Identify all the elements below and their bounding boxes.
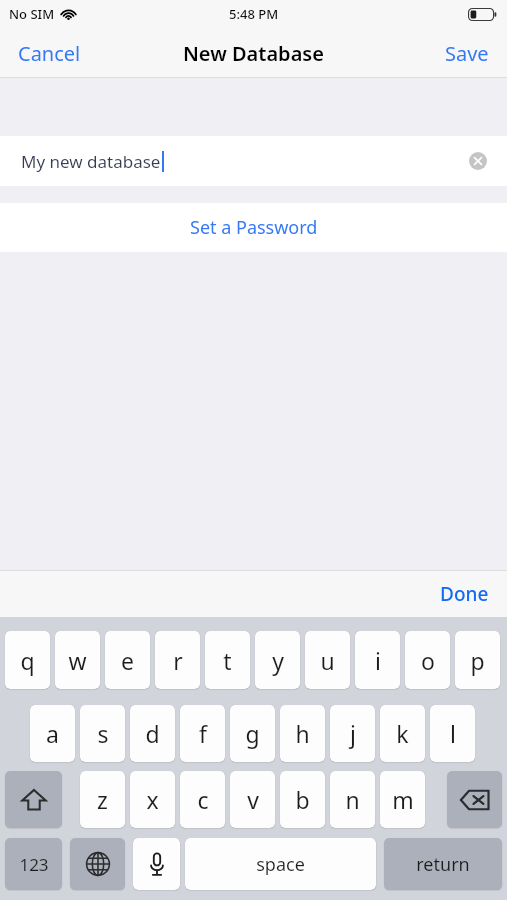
staticText: New Database: [183, 40, 324, 67]
staticText: u: [320, 645, 335, 676]
staticText: e: [121, 645, 134, 676]
button[interactable]: Shift: [5, 771, 62, 828]
button[interactable]: space: [185, 838, 376, 890]
staticText: Set a Password: [190, 215, 318, 240]
staticText: 5:48 PM: [229, 5, 279, 23]
button[interactable]: g: [230, 705, 275, 762]
button[interactable]: w: [55, 631, 100, 689]
staticText: v: [247, 784, 259, 815]
button[interactable]: Set a Password: [0, 203, 507, 252]
staticText: s: [97, 718, 109, 749]
button[interactable]: y: [255, 631, 300, 689]
staticText: r: [173, 645, 183, 676]
button[interactable]: u: [305, 631, 350, 689]
staticText: z: [97, 784, 108, 815]
staticText: c: [197, 784, 209, 815]
staticText: p: [470, 645, 485, 676]
staticText: b: [295, 784, 310, 815]
staticText: d: [145, 718, 160, 749]
staticText: y: [272, 645, 284, 676]
button[interactable]: i: [355, 631, 400, 689]
button[interactable]: a: [30, 705, 75, 762]
staticText: x: [146, 784, 159, 815]
button[interactable]: b: [280, 771, 325, 828]
staticText: l: [450, 718, 456, 749]
button[interactable]: k: [380, 705, 425, 762]
staticText: Done: [440, 581, 489, 607]
button[interactable]: Switch keyboard: [70, 838, 125, 890]
button[interactable]: f: [180, 705, 225, 762]
staticText: j: [350, 718, 356, 749]
staticText: t: [223, 645, 232, 676]
button[interactable]: Backspace: [447, 771, 502, 828]
button[interactable]: My new database: [0, 136, 507, 186]
staticText: Cancel: [18, 40, 81, 67]
staticText: h: [295, 718, 310, 749]
button[interactable]: Save: [427, 28, 507, 78]
button[interactable]: p: [455, 631, 500, 689]
button[interactable]: Cancel: [0, 28, 99, 78]
staticText: 123: [19, 853, 49, 876]
button[interactable]: m: [380, 771, 425, 828]
button[interactable]: s: [80, 705, 125, 762]
staticText: g: [245, 718, 260, 749]
staticText: w: [68, 645, 87, 676]
button[interactable]: d: [130, 705, 175, 762]
button[interactable]: o: [405, 631, 450, 689]
button[interactable]: return: [384, 838, 502, 890]
staticText: o: [421, 645, 435, 676]
staticText: q: [20, 645, 35, 676]
staticText: m: [392, 784, 414, 815]
staticText: Save: [445, 40, 489, 67]
button[interactable]: e: [105, 631, 150, 689]
staticText: n: [345, 784, 360, 815]
button[interactable]: x: [130, 771, 175, 828]
button[interactable]: l: [430, 705, 475, 762]
staticText: My new database: [21, 150, 161, 173]
staticText: i: [375, 645, 381, 676]
staticText: a: [46, 718, 59, 749]
button[interactable]: j: [330, 705, 375, 762]
button[interactable]: z: [80, 771, 125, 828]
button[interactable]: q: [5, 631, 50, 689]
button[interactable]: r: [155, 631, 200, 689]
button[interactable]: Done: [422, 570, 507, 617]
button[interactable]: h: [280, 705, 325, 762]
staticText: return: [416, 852, 470, 877]
button[interactable]: 123: [5, 838, 62, 890]
staticText: No SIM: [9, 5, 55, 23]
button[interactable]: t: [205, 631, 250, 689]
staticText: k: [396, 718, 409, 749]
button[interactable]: Clear text: [464, 147, 492, 175]
button[interactable]: Dictation: [133, 838, 180, 890]
staticText: f: [199, 718, 207, 749]
button[interactable]: v: [230, 771, 275, 828]
button[interactable]: n: [330, 771, 375, 828]
staticText: space: [256, 852, 305, 877]
button[interactable]: c: [180, 771, 225, 828]
